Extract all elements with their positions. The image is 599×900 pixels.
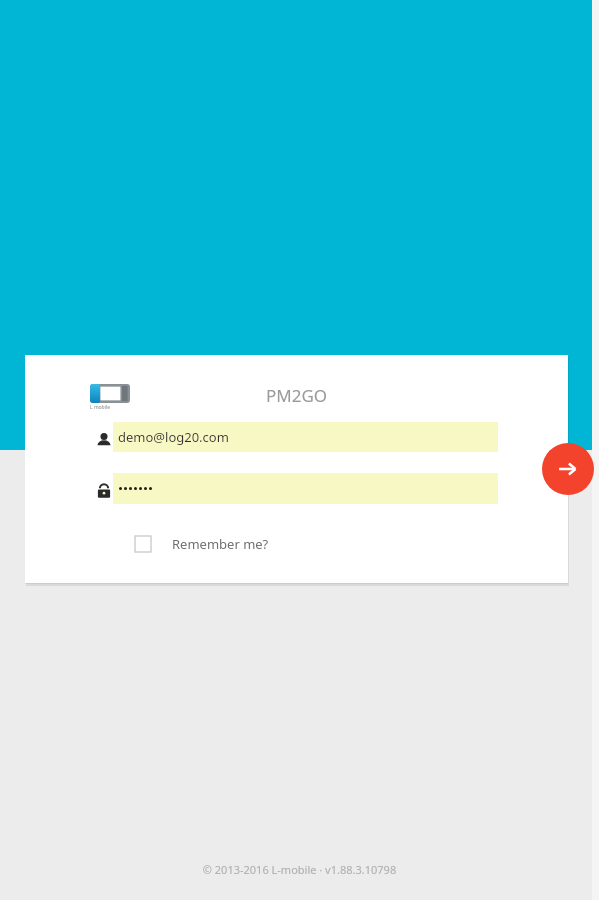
staticText: L mobile xyxy=(90,404,111,411)
staticText: PM2GO xyxy=(25,384,568,407)
button[interactable]: demo@log20.com xyxy=(95,422,498,458)
button[interactable]: Sign in xyxy=(542,443,594,495)
staticText: Remember me? xyxy=(172,535,269,553)
staticText: © 2013-2016 L-mobile · v1.88.3.10798 xyxy=(0,862,599,877)
staticText: demo@log20.com xyxy=(118,428,229,446)
button[interactable] xyxy=(95,473,498,509)
button[interactable]: Remember me? xyxy=(135,530,269,558)
